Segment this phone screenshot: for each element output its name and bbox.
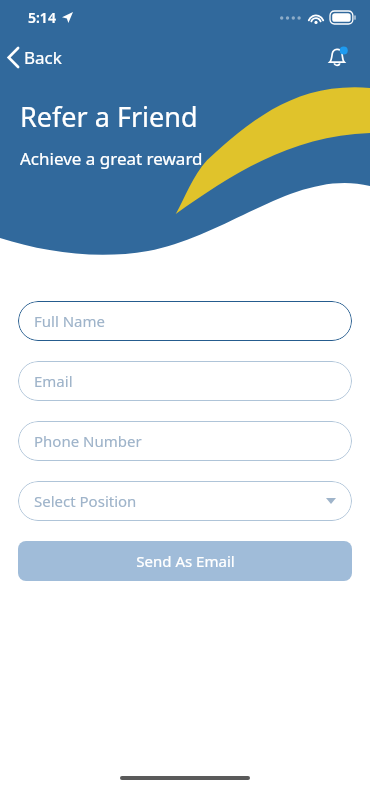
staticText: 5:14 [28, 8, 56, 27]
staticText: Email [34, 371, 73, 391]
staticText: Select Position [34, 491, 137, 511]
button[interactable]: Phone Number [18, 421, 352, 461]
button[interactable]: Back [0, 40, 74, 75]
button[interactable]: Send As Email [18, 541, 352, 581]
staticText: Send As Email [136, 551, 235, 571]
staticText: Full Name [34, 311, 105, 331]
staticText: Achieve a great reward [20, 147, 203, 170]
button[interactable]: Select Position [18, 481, 352, 521]
button[interactable]: Email [18, 361, 352, 401]
staticText: Refer a Friend [20, 98, 198, 135]
button[interactable]: Notifications [322, 42, 352, 72]
staticText: Phone Number [34, 431, 142, 451]
staticText: Back [24, 46, 62, 69]
button[interactable]: Full Name [18, 301, 352, 341]
